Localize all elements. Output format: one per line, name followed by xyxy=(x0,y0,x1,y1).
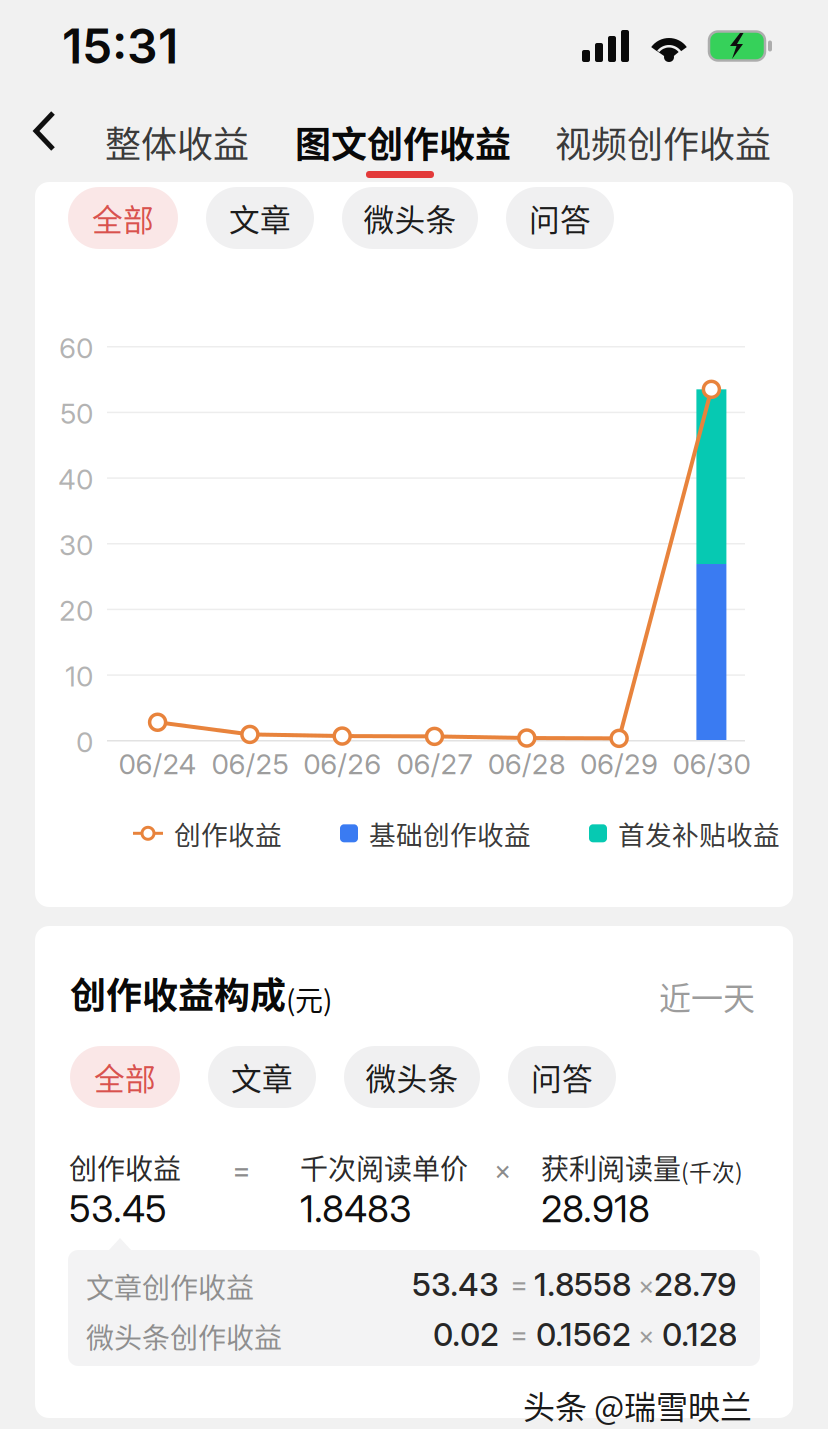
staticText: 0 xyxy=(76,725,93,759)
staticText: 微头条创作收益 xyxy=(86,1316,282,1356)
button[interactable]: 整体收益 xyxy=(97,100,257,184)
staticText: 问答 xyxy=(531,1055,593,1099)
staticText: × xyxy=(638,1320,655,1351)
staticText: 创作收益 xyxy=(69,1147,181,1187)
button[interactable]: 问答 xyxy=(506,187,614,249)
staticText: = xyxy=(232,1152,251,1187)
staticText: 06/28 xyxy=(488,747,566,781)
staticText: 基础创作收益 xyxy=(369,814,531,853)
staticText: 06/30 xyxy=(672,747,750,781)
staticText: 1.8558 xyxy=(534,1265,631,1304)
staticText: 28.79 xyxy=(654,1265,737,1304)
staticText: × xyxy=(494,1154,511,1186)
staticText: 微头条 xyxy=(363,196,456,240)
button[interactable]: 近一天 xyxy=(659,973,755,1019)
staticText: × xyxy=(638,1270,655,1301)
staticText: 06/27 xyxy=(396,747,472,781)
staticText: 0.1562 xyxy=(536,1315,631,1354)
staticText: 文章 xyxy=(231,1055,293,1099)
staticText: 06/24 xyxy=(119,747,197,781)
staticText: 文章 xyxy=(229,196,291,240)
staticText: 60 xyxy=(59,331,93,365)
staticText: 全部 xyxy=(92,196,154,240)
staticText: 图文创作收益 xyxy=(295,116,511,168)
staticText: 20 xyxy=(59,594,93,628)
staticText: 53.45 xyxy=(69,1186,167,1231)
staticText: 40 xyxy=(58,462,93,496)
button[interactable]: 全部 xyxy=(68,187,178,249)
staticText: 全部 xyxy=(94,1055,156,1099)
staticText: (千次) xyxy=(681,1155,743,1187)
staticText: 头条 @瑞雪映兰 xyxy=(523,1382,752,1428)
staticText: 06/25 xyxy=(211,747,288,781)
staticText: 30 xyxy=(59,528,93,562)
button[interactable]: 视频创作收益 xyxy=(547,100,779,184)
staticText: 0.02 xyxy=(433,1315,499,1354)
staticText: 0.128 xyxy=(662,1315,737,1354)
staticText: 06/29 xyxy=(580,747,658,781)
staticText: 50 xyxy=(60,397,93,431)
staticText: 首发补贴收益 xyxy=(618,814,780,853)
staticText: 创作收益构成 xyxy=(70,967,286,1019)
button[interactable]: 文章 xyxy=(206,187,314,249)
staticText: 53.43 xyxy=(412,1265,499,1304)
staticText: 获利阅读量 xyxy=(541,1147,681,1187)
staticText: 微头条 xyxy=(365,1055,458,1099)
staticText: 06/26 xyxy=(303,747,381,781)
staticText: 28.918 xyxy=(541,1186,650,1231)
staticText: 整体收益 xyxy=(105,116,249,168)
staticText: 文章创作收益 xyxy=(86,1266,254,1306)
staticText: 千次阅读单价 xyxy=(300,1147,468,1187)
button[interactable]: 问答 xyxy=(508,1046,616,1108)
staticText: 视频创作收益 xyxy=(555,116,771,168)
staticText: 1.8483 xyxy=(300,1186,412,1231)
staticText: = xyxy=(510,1317,528,1351)
button[interactable]: 微头条 xyxy=(342,187,478,249)
button[interactable]: 微头条 xyxy=(344,1046,480,1108)
staticText: (元) xyxy=(286,979,332,1019)
staticText: = xyxy=(510,1267,528,1301)
staticText: 近一天 xyxy=(659,973,755,1019)
staticText: 问答 xyxy=(529,196,591,240)
button[interactable]: 文章 xyxy=(208,1046,316,1108)
button[interactable]: Back xyxy=(8,94,82,168)
staticText: 15:31 xyxy=(62,17,178,75)
staticText: 创作收益 xyxy=(174,814,282,853)
staticText: 10 xyxy=(65,659,93,693)
button[interactable]: 全部 xyxy=(70,1046,180,1108)
button[interactable]: 图文创作收益 xyxy=(287,100,519,184)
